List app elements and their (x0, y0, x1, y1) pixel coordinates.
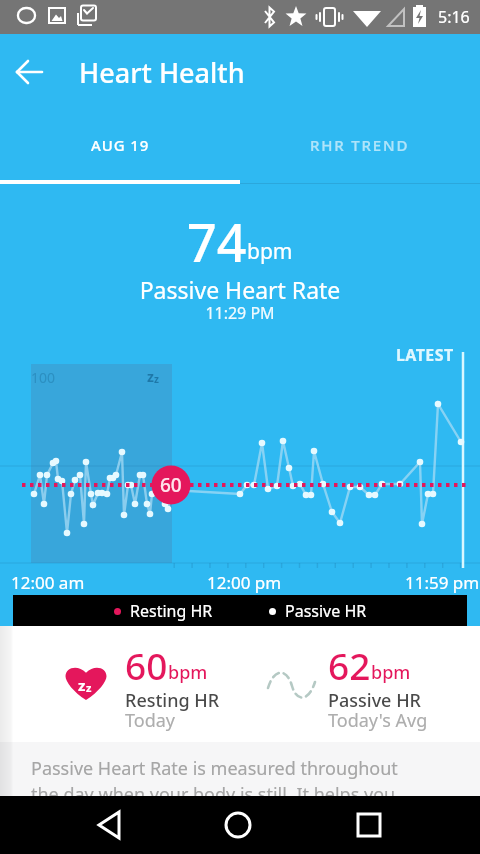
staticText: Heart Health (79, 54, 245, 91)
staticText: z (154, 372, 159, 386)
staticText: 5:16 (438, 6, 470, 28)
staticText: Passive HR (285, 600, 367, 622)
staticText: 74 (187, 206, 247, 277)
button[interactable]: Back (10, 52, 48, 90)
staticText: LATEST (396, 344, 454, 366)
staticText: 60 (160, 472, 182, 498)
staticText: bpm (168, 660, 208, 685)
staticText: z (147, 367, 154, 386)
button[interactable]: Resting HR (13, 595, 467, 626)
staticText: z (86, 680, 92, 695)
staticText: bpm (371, 660, 411, 685)
staticText: Today (125, 708, 175, 733)
staticText: bpm (247, 237, 293, 266)
staticText: Passive Heart Rate is measured throughou… (31, 756, 398, 807)
staticText: 12:00 am (11, 571, 85, 594)
staticText: Passive Heart Rate (0, 274, 480, 305)
staticText: 100 (31, 368, 56, 387)
staticText: Resting HR (125, 688, 220, 713)
staticText: Passive HR (328, 688, 421, 713)
staticText: Today's Avg (328, 708, 428, 733)
staticText: Resting HR (130, 600, 213, 622)
staticText: AUG 19 (91, 135, 150, 155)
staticText: 60 (125, 640, 168, 690)
staticText: z (78, 675, 86, 695)
staticText: 11:59 pm (405, 571, 480, 594)
staticText: RHR TREND (310, 135, 410, 155)
button[interactable]: RHR TREND (240, 106, 480, 184)
staticText: 62 (328, 640, 371, 690)
staticText: 11:29 PM (0, 302, 480, 324)
staticText: 12:00 pm (207, 571, 282, 594)
button[interactable]: z (0, 626, 240, 742)
button[interactable]: AUG 19 (0, 106, 240, 184)
button[interactable]: 62 (240, 626, 480, 742)
